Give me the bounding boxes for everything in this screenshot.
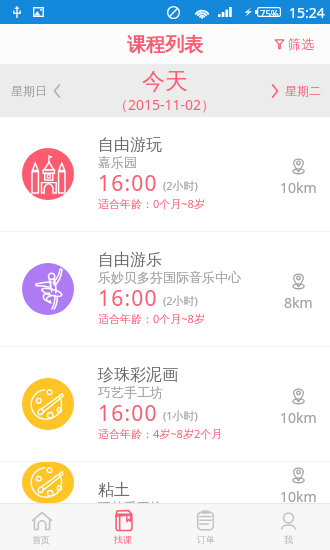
staticText: 适合年龄：4岁~8岁: [98, 541, 194, 550]
staticText: 75%: [260, 7, 279, 17]
staticText: 10km: [280, 408, 317, 427]
button[interactable]: 找课: [82, 504, 164, 550]
staticText: (2小时): [163, 293, 198, 308]
button[interactable]: 首页: [0, 504, 82, 550]
staticText: 珍珠彩泥画: [98, 365, 178, 385]
staticText: 适合年龄：0个月~8岁: [98, 311, 205, 326]
staticText: 8km: [284, 293, 313, 312]
staticText: 巧艺手工坊: [98, 499, 163, 515]
button[interactable]: 星期日: [0, 83, 69, 98]
button[interactable]: 我: [247, 504, 330, 550]
staticText: 10km: [280, 487, 317, 506]
staticText: 星期二: [285, 83, 321, 98]
staticText: (2小时): [163, 178, 198, 193]
staticText: 适合年龄：0个月~8岁: [98, 196, 205, 211]
staticText: 15:24: [289, 3, 325, 22]
staticText: （2015-11-02）: [114, 95, 216, 114]
button[interactable]: 筛选: [267, 36, 330, 52]
staticText: 16:00: [98, 514, 158, 543]
staticText: 16:00: [98, 399, 158, 428]
button[interactable]: 粘土: [0, 462, 330, 503]
staticText: 粘土: [98, 480, 130, 500]
staticText: 自由游玩: [98, 135, 162, 155]
staticText: 16:00: [98, 169, 158, 198]
staticText: 巧艺手工坊: [98, 384, 163, 400]
staticText: 首页: [32, 534, 50, 545]
staticText: 星期日: [11, 83, 47, 98]
button[interactable]: 自由游乐: [0, 232, 330, 346]
staticText: 找课: [114, 534, 132, 545]
staticText: 筛选: [288, 36, 314, 52]
staticText: 课程列表: [127, 33, 203, 57]
staticText: 自由游乐: [98, 250, 162, 270]
button[interactable]: 珍珠彩泥画: [0, 347, 330, 461]
staticText: (1小时): [163, 408, 198, 423]
staticText: (1小时): [163, 523, 198, 538]
staticText: 乐妙贝多芬国际音乐中心: [98, 269, 241, 285]
staticText: 适合年龄：4岁~8岁2个月: [98, 426, 223, 441]
staticText: 今天: [142, 67, 188, 96]
button[interactable]: 订单: [164, 504, 247, 550]
button[interactable]: 星期二: [263, 83, 330, 98]
staticText: 16:00: [98, 284, 158, 313]
staticText: 10km: [280, 178, 317, 197]
staticText: 嘉乐园: [98, 154, 137, 170]
staticText: 订单: [197, 534, 215, 545]
staticText: 我: [284, 534, 293, 545]
button[interactable]: 自由游玩: [0, 117, 330, 231]
